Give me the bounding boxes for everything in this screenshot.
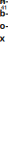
staticText: 9:41 (1, 0, 7, 11)
staticText: Inbox (0, 0, 8, 44)
